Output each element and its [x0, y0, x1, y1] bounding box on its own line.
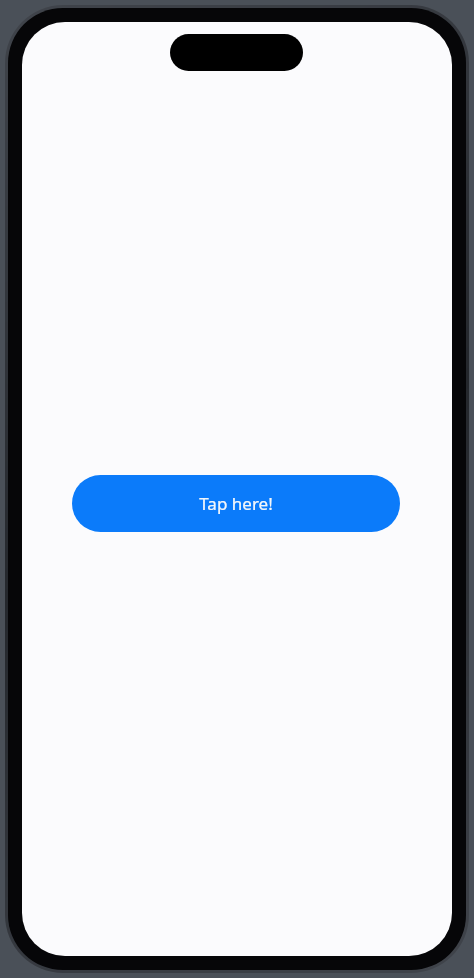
staticText: Tap here! — [199, 492, 273, 515]
button[interactable]: Tap here! — [72, 475, 400, 532]
